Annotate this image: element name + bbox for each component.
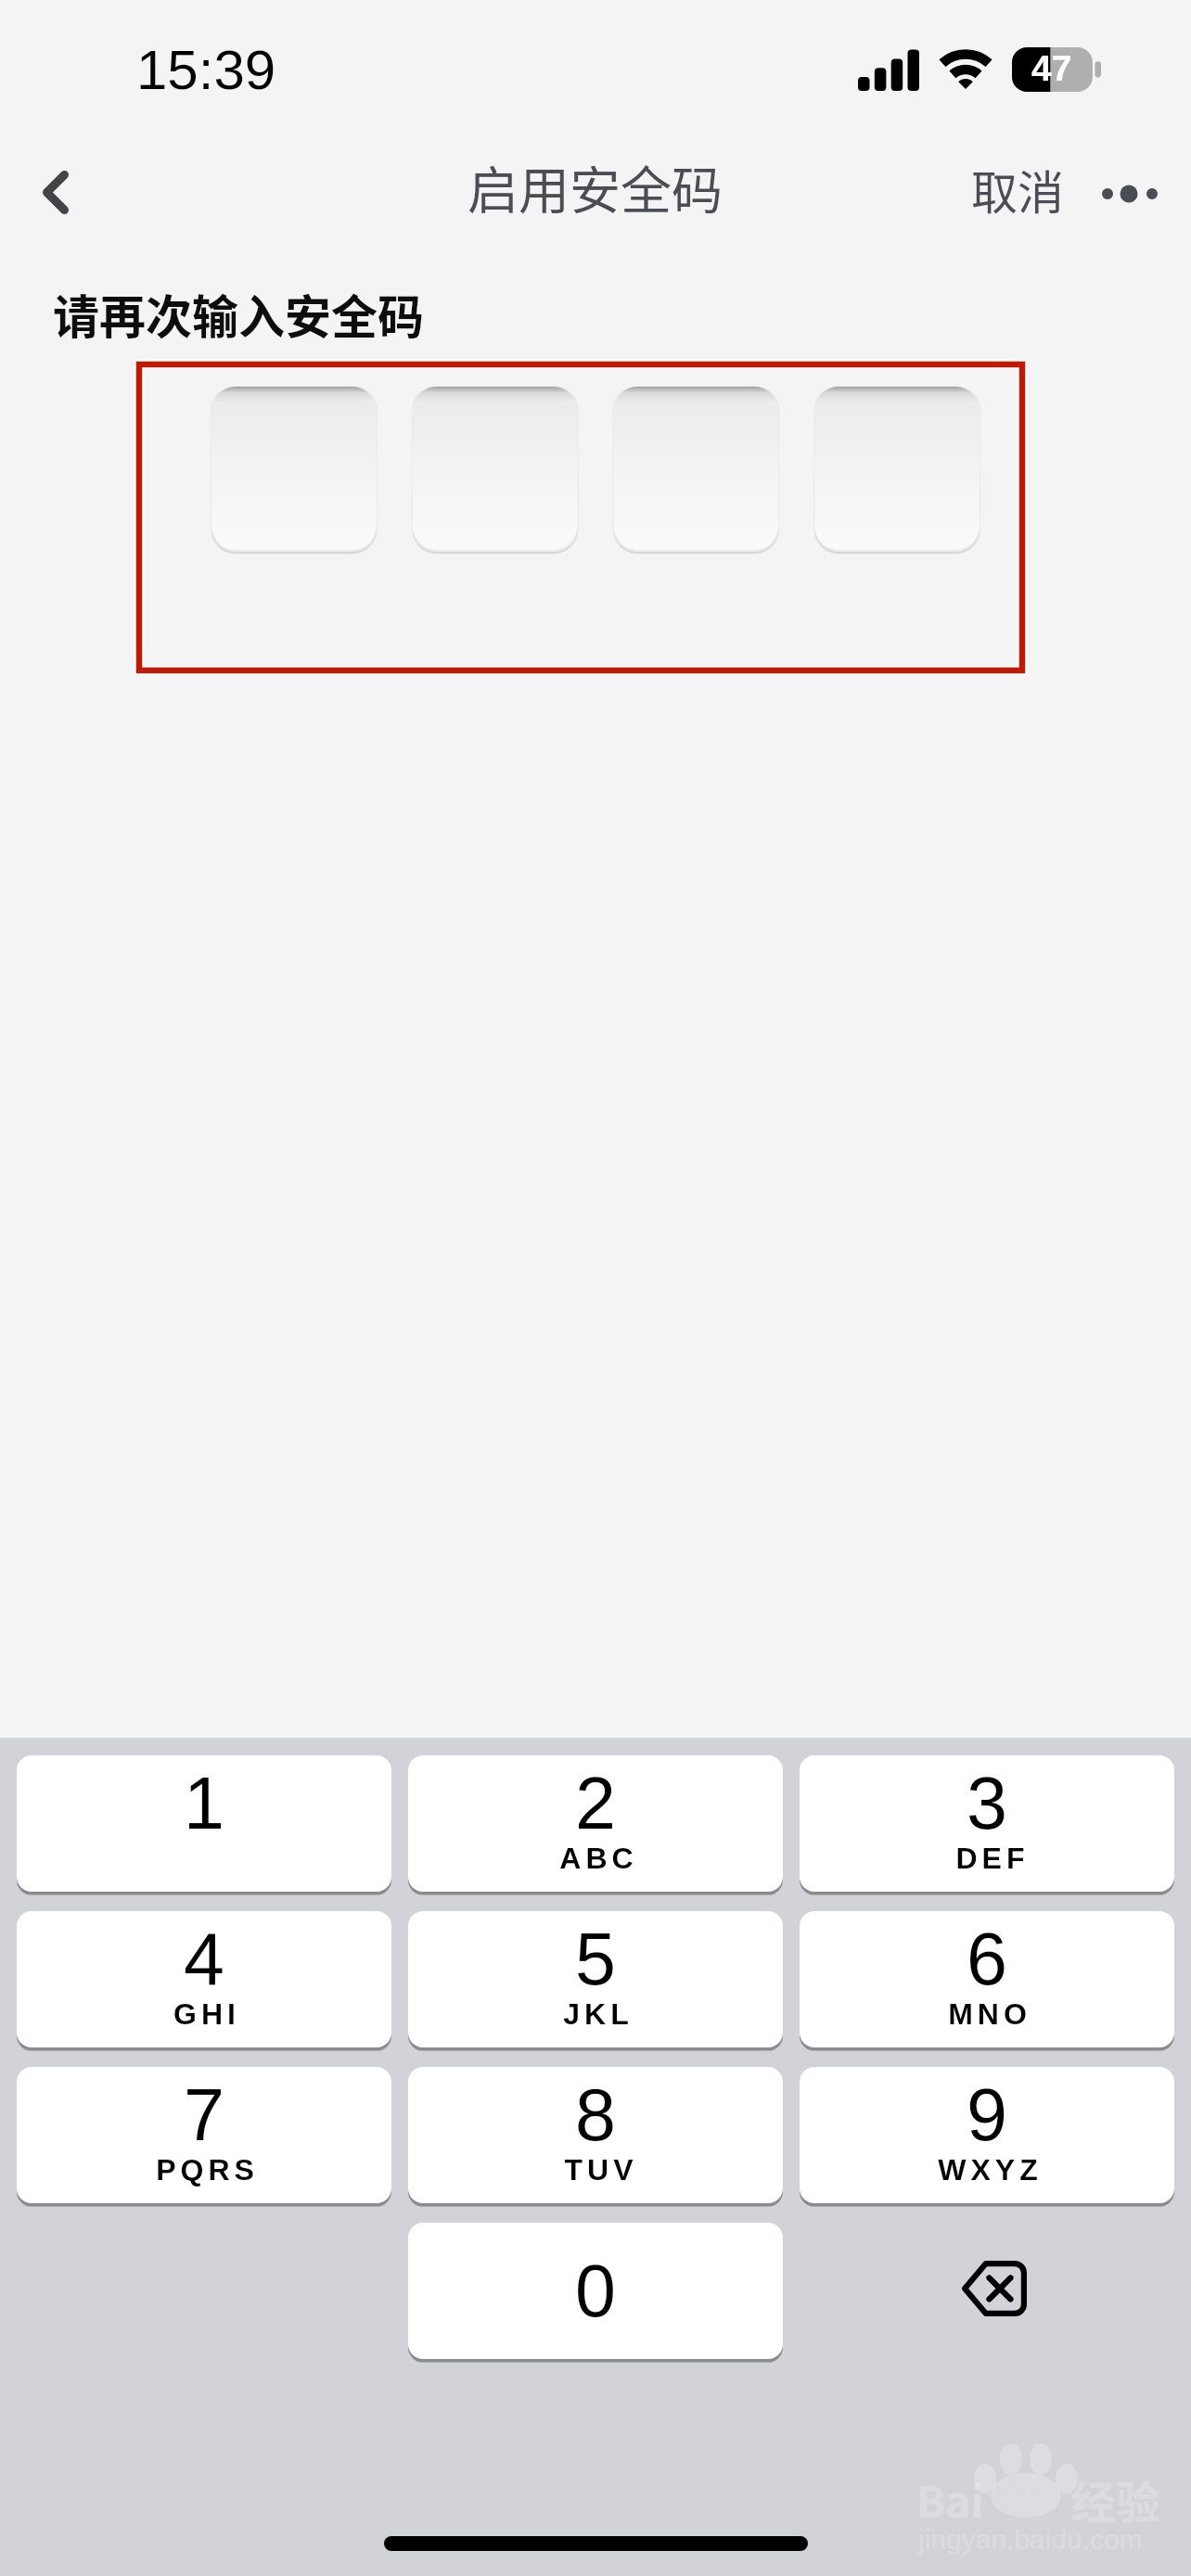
staticText: 6: [967, 1918, 1007, 1999]
button[interactable]: 2: [408, 1755, 783, 1892]
button[interactable]: Security code digit 3: [614, 387, 779, 550]
staticText: ABC: [559, 1842, 638, 1875]
button[interactable]: Security code digit 2: [413, 387, 578, 550]
staticText: Bai: [916, 2468, 984, 2531]
staticText: jingyan.baidu.com: [918, 2524, 1143, 2556]
staticText: DEF: [954, 1842, 1027, 1875]
staticText: 取消: [971, 156, 1064, 223]
staticText: 7: [184, 2073, 224, 2155]
staticText: PQRS: [156, 2153, 259, 2187]
button[interactable]: 8: [408, 2067, 783, 2203]
button[interactable]: More options: [1082, 147, 1178, 237]
staticText: TUV: [562, 2153, 635, 2187]
button[interactable]: 1: [17, 1755, 391, 1892]
button[interactable]: Backspace: [800, 2223, 1174, 2359]
button[interactable]: Back: [15, 141, 96, 243]
staticText: JKL: [563, 1997, 634, 2031]
button[interactable]: Security code digit 4: [815, 387, 980, 550]
staticText: MNO: [948, 1997, 1031, 2031]
button[interactable]: 取消: [960, 144, 1075, 235]
staticText: 0: [575, 2250, 616, 2331]
staticText: 2: [575, 1762, 616, 1843]
staticText: 1: [184, 1762, 224, 1843]
button[interactable]: 6: [800, 1911, 1174, 2047]
staticText: du: [992, 2474, 1041, 2518]
button[interactable]: 3: [800, 1755, 1174, 1892]
staticText: 9: [967, 2073, 1007, 2155]
staticText: 经验: [1071, 2467, 1161, 2531]
staticText: 4: [184, 1918, 224, 1999]
staticText: 3: [967, 1762, 1007, 1843]
button[interactable]: 4: [17, 1911, 391, 2047]
staticText: 5: [575, 1918, 616, 1999]
button[interactable]: 7: [17, 2067, 391, 2203]
staticText: 请再次输入安全码: [53, 280, 424, 347]
button[interactable]: Security code digit 1: [211, 387, 377, 550]
button[interactable]: 5: [408, 1911, 783, 2047]
staticText: WXYZ: [938, 2153, 1043, 2187]
staticText: 15:39: [136, 39, 276, 101]
button[interactable]: 0: [408, 2223, 783, 2359]
staticText: 8: [575, 2073, 616, 2155]
staticText: GHI: [173, 1997, 240, 2031]
staticText: 47: [1031, 48, 1072, 89]
staticText: 启用安全码: [467, 149, 724, 223]
button[interactable]: 9: [800, 2067, 1174, 2203]
